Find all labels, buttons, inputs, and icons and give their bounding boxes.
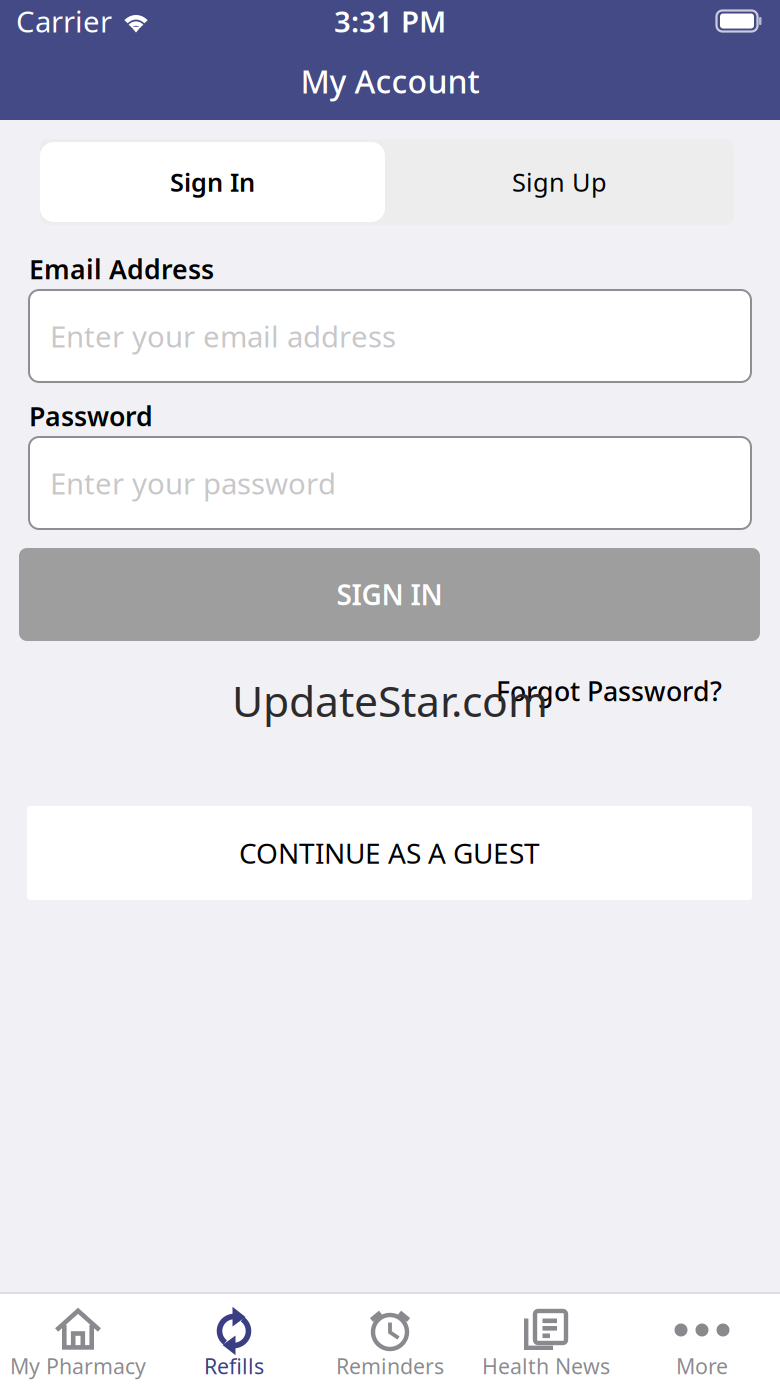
staticText: Email Address <box>29 251 214 287</box>
button[interactable]: Health News <box>468 1294 624 1387</box>
button[interactable]: CONTINUE AS A GUEST <box>27 806 752 900</box>
staticText: 3:31 PM <box>334 1 446 40</box>
staticText: Reminders <box>336 1352 444 1380</box>
button[interactable]: My Pharmacy <box>0 1294 156 1387</box>
staticText: More <box>676 1352 728 1380</box>
staticText: Refills <box>204 1352 264 1380</box>
staticText: Health News <box>482 1352 610 1380</box>
staticText: Enter your email address <box>50 316 396 355</box>
button[interactable]: SIGN IN <box>19 548 760 641</box>
staticText: Sign In <box>170 165 255 199</box>
button[interactable]: Sign Up <box>385 142 734 222</box>
staticText: Carrier <box>16 1 112 40</box>
staticText: Sign Up <box>512 165 607 199</box>
staticText: SIGN IN <box>336 576 442 613</box>
button[interactable]: Refills <box>156 1294 312 1387</box>
button[interactable]: More <box>624 1294 780 1387</box>
button[interactable]: Reminders <box>312 1294 468 1387</box>
staticText: Enter your password <box>50 463 336 502</box>
staticText: UpdateStar.com <box>232 672 548 729</box>
staticText: Password <box>29 398 153 434</box>
button[interactable]: Sign In <box>40 142 385 222</box>
staticText: My Account <box>300 60 479 102</box>
staticText: Forgot Password? <box>496 673 722 709</box>
staticText: My Pharmacy <box>10 1352 146 1380</box>
staticText: CONTINUE AS A GUEST <box>239 834 540 872</box>
button[interactable]: Forgot Password? <box>496 672 722 710</box>
